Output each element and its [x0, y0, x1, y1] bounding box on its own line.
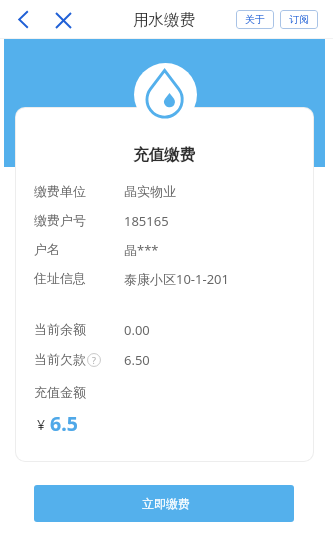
- staticText: 0.00: [124, 321, 150, 339]
- button[interactable]: 立即缴费: [34, 485, 294, 522]
- staticText: 泰康小区10-1-201: [124, 270, 229, 288]
- staticText: 6.50: [124, 351, 150, 369]
- staticText: 晶实物业: [124, 183, 176, 199]
- button[interactable]: Back: [9, 5, 37, 33]
- staticText: 185165: [124, 212, 169, 230]
- staticText: 缴费单位: [34, 183, 86, 199]
- staticText: 用水缴费: [133, 10, 195, 30]
- button[interactable]: Close: [49, 6, 77, 34]
- staticText: 关于: [245, 13, 265, 26]
- staticText: 晶***: [124, 241, 159, 259]
- staticText: 订阅: [289, 13, 309, 26]
- staticText: 充值金额: [34, 384, 86, 400]
- staticText: ?: [92, 354, 96, 366]
- staticText: 缴费户号: [34, 212, 86, 228]
- staticText: 充值缴费: [133, 145, 195, 165]
- staticText: 立即缴费: [142, 496, 190, 511]
- staticText: 6.5: [50, 410, 78, 437]
- staticText: 住址信息: [34, 270, 86, 286]
- staticText: 当前欠款: [34, 351, 86, 367]
- staticText: ¥: [37, 415, 46, 434]
- button[interactable]: 订阅: [280, 10, 318, 29]
- button[interactable]: Help: [87, 353, 101, 367]
- button[interactable]: 关于: [236, 10, 274, 29]
- staticText: 当前余额: [34, 321, 86, 337]
- staticText: 户名: [34, 241, 60, 257]
